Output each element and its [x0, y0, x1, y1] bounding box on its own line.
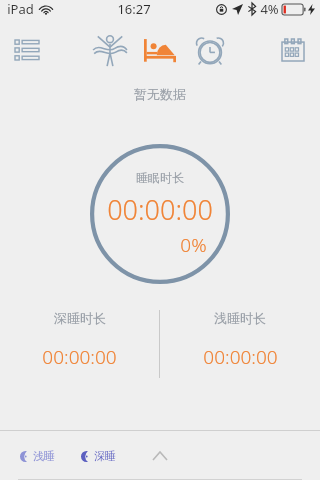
button[interactable]: 浅睡时长 [160, 310, 320, 370]
button[interactable]: 深睡时长 [0, 310, 159, 370]
staticText: 深睡 [94, 449, 116, 463]
staticText: 16:27 [117, 0, 151, 18]
staticText: 00:00:00 [107, 191, 213, 228]
button[interactable]: Alarm [188, 28, 232, 72]
button[interactable]: 深睡 [79, 447, 118, 465]
button[interactable]: Awake [88, 28, 132, 72]
staticText: 4% [260, 0, 279, 18]
staticText: 深睡时长 [54, 310, 106, 326]
button[interactable]: Expand [145, 441, 175, 471]
staticText: 睡眠时长 [136, 170, 184, 185]
staticText: 00:00:00 [42, 344, 117, 370]
button[interactable]: List [10, 33, 44, 67]
staticText: 暂无数据 [134, 86, 186, 102]
staticText: 浅睡 [33, 449, 55, 463]
staticText: 0% [180, 232, 207, 258]
staticText: iPad [7, 0, 34, 18]
staticText: 00:00:00 [203, 344, 278, 370]
button[interactable]: 浅睡 [18, 447, 57, 465]
button[interactable]: Sleep [138, 28, 182, 72]
staticText: 浅睡时长 [214, 310, 266, 326]
button[interactable]: Calendar [276, 33, 310, 67]
